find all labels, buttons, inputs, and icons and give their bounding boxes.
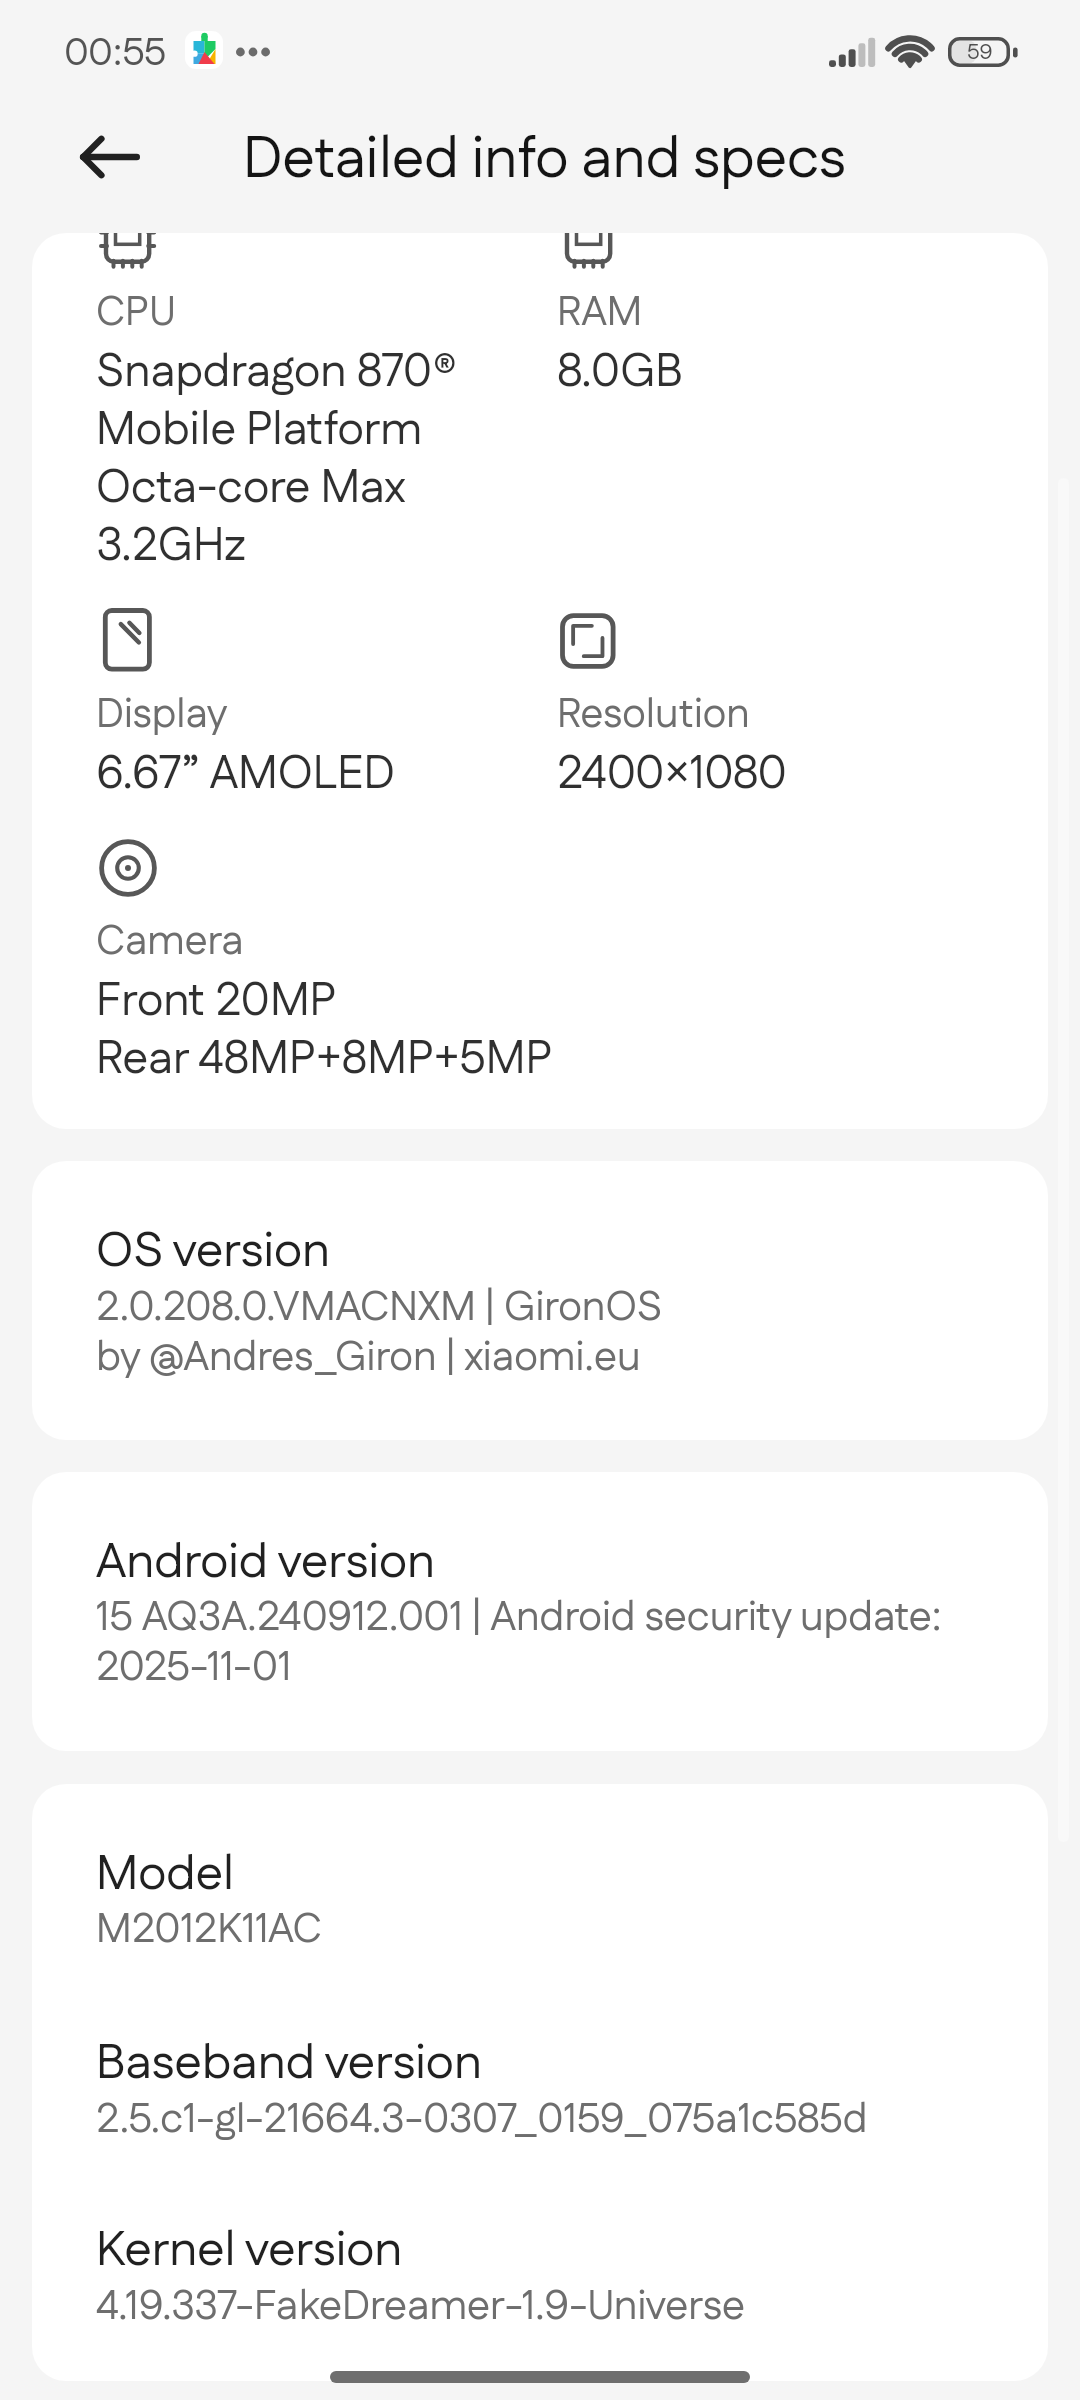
staticText: Model [96, 1849, 235, 1906]
staticText: Detailed info and specs [243, 132, 846, 196]
button[interactable]: CPU [32, 233, 1048, 1129]
staticText: Display [96, 692, 228, 742]
staticText: 00:55 [64, 31, 167, 79]
button[interactable]: Back [62, 117, 146, 197]
staticText: CPU [96, 290, 176, 340]
staticText: Resolution [557, 692, 750, 742]
staticText: 2.5.c1-gl-21664.3-0307_0159_075a1c585d [96, 2097, 868, 2147]
staticText: 59 [967, 41, 993, 67]
button[interactable] [32, 1973, 1048, 2161]
staticText: Baseband version [96, 2038, 482, 2095]
staticText: Snapdragon 870® Mobile Platform Octa-cor… [96, 345, 458, 577]
staticText: RAM [557, 290, 643, 340]
staticText: M2012K11AC [96, 1907, 322, 1957]
staticText: 8.0GB [557, 345, 683, 403]
staticText: OS version [96, 1226, 331, 1283]
staticText: Android version [96, 1537, 436, 1594]
button[interactable] [32, 1161, 1048, 1440]
staticText: 4.19.337-FakeDreamer-1.9-Universe [96, 2284, 746, 2334]
staticText: Camera [96, 919, 244, 969]
staticText: 15 AQ3A.240912.001 | Android security up… [96, 1595, 942, 1695]
button[interactable] [32, 1784, 1048, 1973]
button[interactable] [32, 1472, 1048, 1751]
staticText: Kernel version [96, 2225, 403, 2282]
button[interactable] [32, 2161, 1048, 2381]
staticText: 6.67” AMOLED [96, 747, 395, 805]
staticText: Front 20MP Rear 48MP+8MP+5MP [96, 974, 553, 1090]
staticText: 2400×1080 [557, 747, 787, 805]
staticText: 2.0.208.0.VMACNXM | GironOS by @Andres_G… [96, 1285, 663, 1385]
